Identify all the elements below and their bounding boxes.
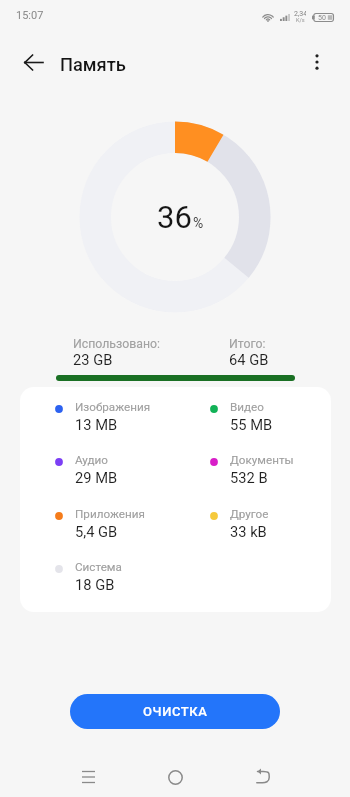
- staticText: 64 GB: [229, 351, 269, 368]
- staticText: ОЧИСТКА: [143, 704, 208, 719]
- staticText: Система: [75, 560, 122, 574]
- staticText: 532 B: [230, 469, 268, 486]
- staticText: 29 MB: [75, 469, 118, 486]
- button[interactable]: Home: [154, 757, 196, 797]
- staticText: 15:07: [16, 9, 44, 22]
- button[interactable]: Back: [9, 38, 57, 86]
- staticText: 36: [157, 199, 192, 235]
- staticText: 5,4 GB: [75, 523, 118, 540]
- staticText: 55 MB: [230, 416, 273, 433]
- staticText: 2,34: [294, 10, 306, 18]
- staticText: %: [193, 215, 204, 231]
- staticText: Память: [60, 54, 126, 75]
- staticText: Использовано:: [73, 337, 161, 351]
- staticText: 33 kB: [230, 523, 267, 540]
- staticText: Аудио: [75, 453, 109, 467]
- button[interactable]: Recents: [67, 757, 109, 797]
- button[interactable]: More options: [293, 38, 341, 86]
- button[interactable]: Back: [242, 757, 284, 797]
- staticText: Итого:: [229, 337, 266, 351]
- staticText: K/s: [296, 17, 305, 23]
- staticText: Видео: [230, 400, 264, 414]
- button[interactable]: ОЧИСТКА: [70, 694, 280, 729]
- staticText: Приложения: [75, 507, 145, 521]
- staticText: Другое: [230, 507, 269, 521]
- staticText: 23 GB: [73, 351, 113, 368]
- staticText: 50: [318, 14, 326, 22]
- staticText: Документы: [230, 453, 294, 467]
- staticText: 18 GB: [75, 576, 115, 593]
- staticText: 13 MB: [75, 416, 118, 433]
- staticText: Изображения: [75, 400, 151, 414]
